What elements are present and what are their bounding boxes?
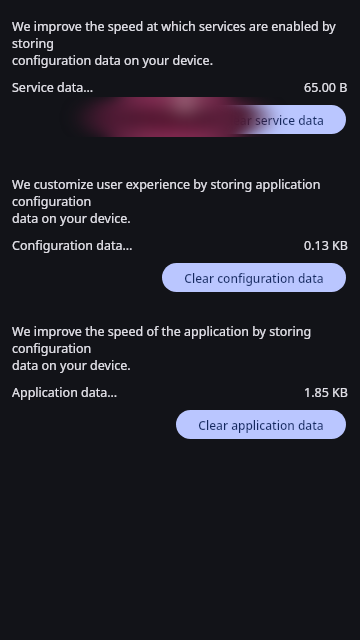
staticText: Application data…: [12, 384, 118, 401]
staticText: Service data…: [12, 79, 94, 96]
staticText: Clear service data: [222, 112, 324, 128]
staticText: data on your device.: [12, 210, 131, 227]
button[interactable]: Clear application data: [176, 410, 346, 439]
staticText: Clear configuration data: [184, 270, 324, 286]
staticText: 0.13 KB: [304, 237, 348, 254]
staticText: configuration data on your device.: [12, 52, 213, 69]
staticText: Clear application data: [198, 417, 324, 433]
button[interactable]: Clear configuration data: [162, 263, 346, 292]
staticText: Configuration data…: [12, 237, 133, 254]
staticText: 65.00 B: [304, 79, 348, 96]
staticText: 1.85 KB: [304, 384, 348, 401]
staticText: We improve the speed of the application …: [12, 323, 348, 356]
staticText: We customize user experience by storing …: [12, 176, 348, 209]
staticText: We improve the speed at which services a…: [12, 18, 348, 51]
button[interactable]: Clear service data: [200, 105, 346, 134]
staticText: data on your device.: [12, 357, 131, 374]
